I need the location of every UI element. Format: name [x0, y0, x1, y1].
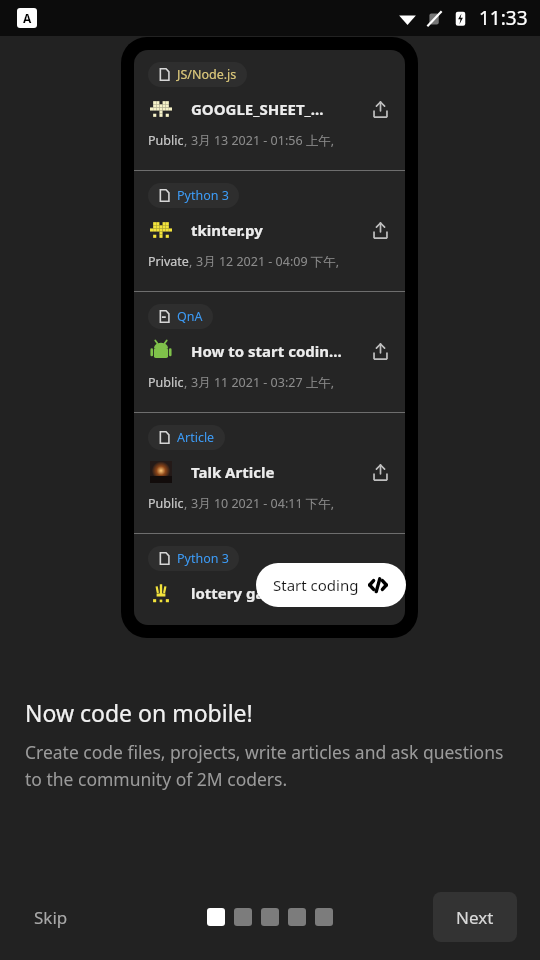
staticText: Python 3	[177, 187, 229, 204]
button[interactable]: Share	[367, 580, 393, 606]
staticText: ,	[184, 132, 191, 149]
staticText: GOOGLE_SHEET_...	[191, 99, 367, 119]
staticText: Python 3	[177, 550, 229, 567]
staticText: QnA	[177, 308, 203, 325]
staticText: Public	[148, 495, 184, 512]
button[interactable]: Article	[134, 413, 405, 533]
button[interactable]: Python 3	[134, 534, 405, 625]
staticText: How to start codin...	[191, 341, 367, 361]
staticText: A	[23, 10, 32, 26]
staticText: Create code files, projects, write artic…	[25, 740, 516, 791]
staticText: Article	[177, 429, 215, 446]
staticText: ,	[189, 253, 196, 270]
staticText: lottery game.py	[191, 583, 367, 603]
staticText: ,	[184, 374, 191, 391]
staticText: Next	[456, 906, 494, 929]
staticText: 3月 13 2021 - 01:56 上午,	[191, 132, 335, 149]
staticText: 3月 10 2021 - 04:11 下午,	[191, 495, 335, 512]
button[interactable]: Share	[367, 217, 393, 243]
button[interactable]: Share	[367, 338, 393, 364]
staticText: tkinter.py	[191, 220, 367, 240]
button[interactable]: Share	[367, 96, 393, 122]
button[interactable]: Share	[367, 459, 393, 485]
button[interactable]: Start coding	[256, 563, 406, 607]
button[interactable]: QnA	[134, 292, 405, 412]
staticText: 3月 12 2021 - 04:09 下午,	[196, 253, 340, 270]
button[interactable]: Skip	[22, 898, 80, 937]
staticText: Skip	[34, 906, 68, 929]
button[interactable]: JS/Node.js	[134, 50, 405, 170]
staticText: JS/Node.js	[177, 66, 237, 83]
staticText: 11:33	[479, 5, 528, 31]
staticText: Private	[148, 253, 189, 270]
staticText: 3月 11 2021 - 03:27 上午,	[191, 374, 335, 391]
staticText: Start coding	[273, 575, 359, 595]
staticText: Public	[148, 132, 184, 149]
staticText: Now code on mobile!	[25, 697, 253, 728]
button[interactable]: Next	[433, 892, 517, 942]
staticText: Talk Article	[191, 462, 367, 482]
staticText: Public	[148, 374, 184, 391]
staticText: ,	[184, 495, 191, 512]
button[interactable]: Python 3	[134, 171, 405, 291]
